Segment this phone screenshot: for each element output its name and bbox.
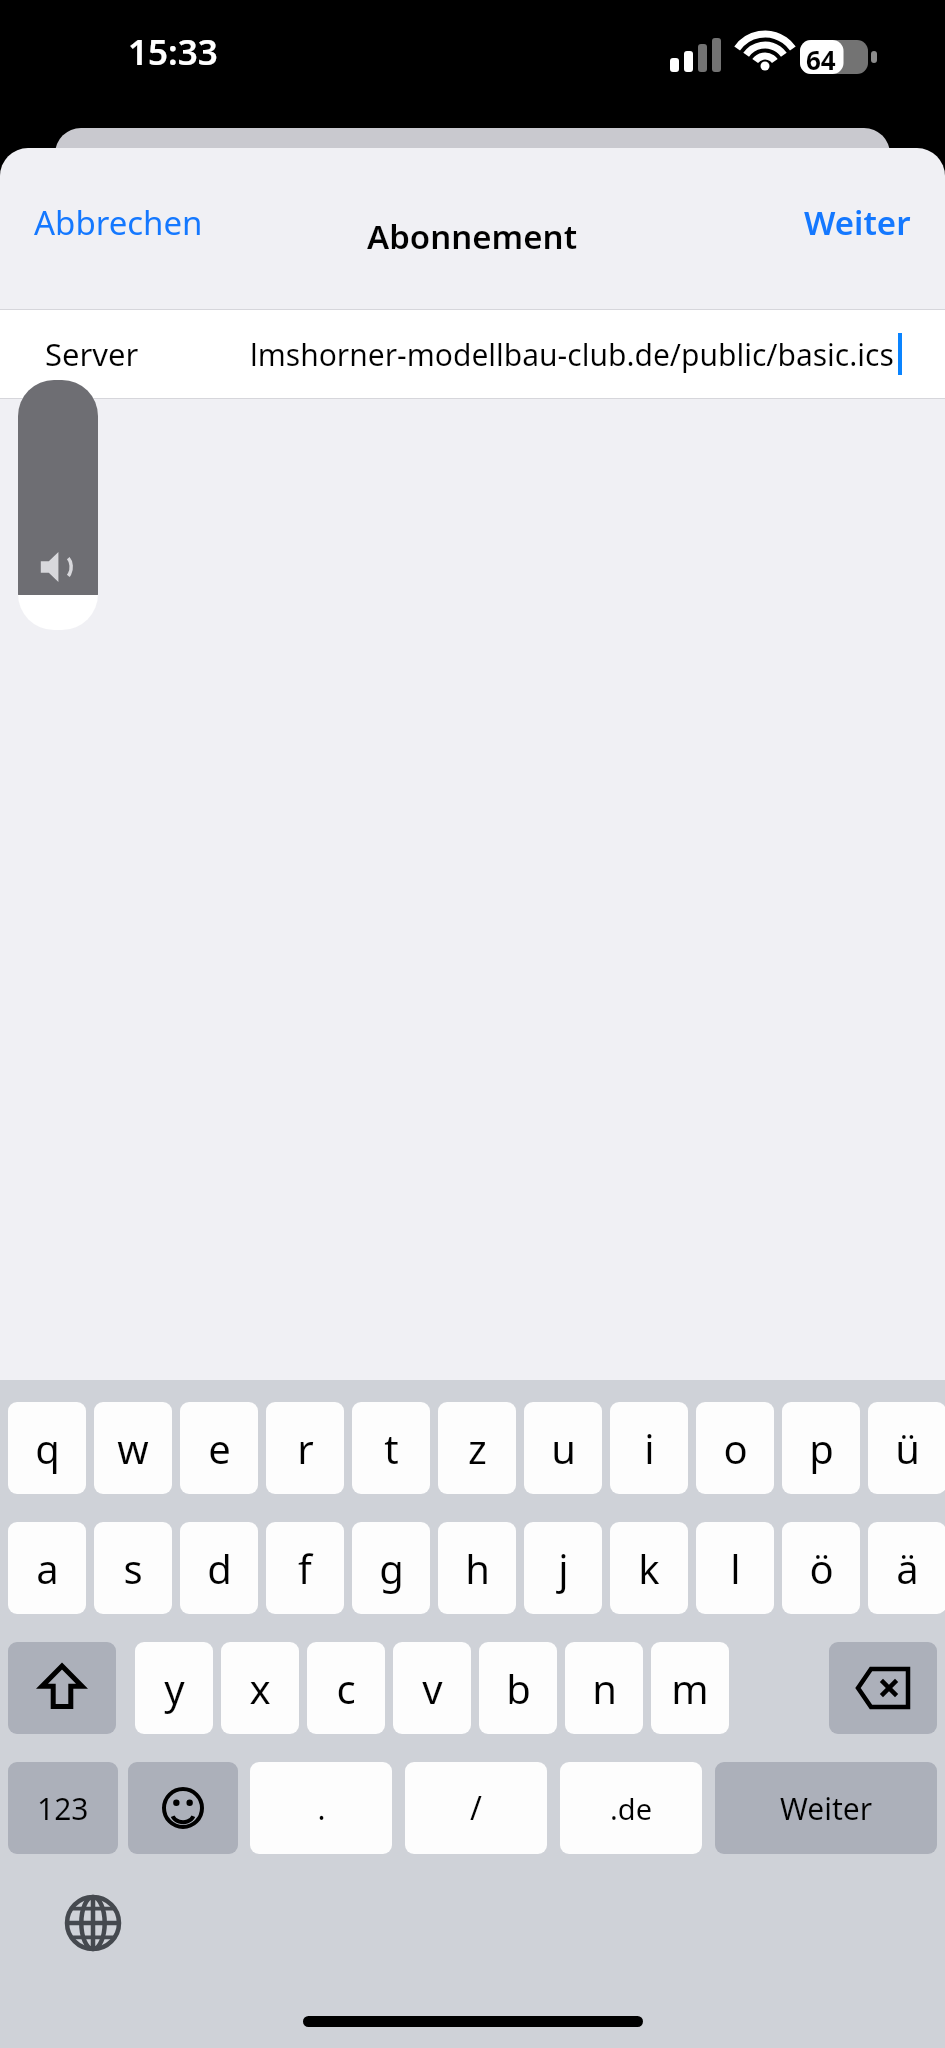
button[interactable]: Server	[0, 310, 945, 398]
staticText: lmshorner-modellbau-club.de/public/basic…	[250, 334, 894, 375]
button[interactable]: .de	[560, 1762, 702, 1854]
button[interactable]: k	[610, 1522, 688, 1614]
button[interactable]: Numbers	[8, 1762, 118, 1854]
staticText: c	[336, 1661, 356, 1715]
button[interactable]: y	[135, 1642, 213, 1734]
staticText: n	[592, 1661, 617, 1715]
staticText: .de	[610, 1789, 652, 1828]
button[interactable]: s	[94, 1522, 172, 1614]
button[interactable]: a	[8, 1522, 86, 1614]
staticText: d	[207, 1541, 232, 1595]
staticText: Weiter	[804, 200, 911, 245]
staticText: 123	[37, 1788, 89, 1829]
button[interactable]: r	[266, 1402, 344, 1494]
button[interactable]: Shift	[8, 1642, 116, 1734]
staticText: w	[117, 1421, 149, 1475]
button[interactable]: x	[221, 1642, 299, 1734]
staticText: t	[384, 1421, 399, 1475]
button[interactable]: z	[438, 1402, 516, 1494]
staticText: ü	[895, 1421, 920, 1475]
button[interactable]: f	[266, 1522, 344, 1614]
button[interactable]: ü	[868, 1402, 945, 1494]
staticText: l	[730, 1541, 741, 1595]
button[interactable]: u	[524, 1402, 602, 1494]
staticText: m	[671, 1661, 709, 1715]
staticText: y	[164, 1661, 185, 1715]
staticText: j	[558, 1541, 569, 1595]
button[interactable]: Backspace	[829, 1642, 937, 1734]
staticText: ä	[896, 1541, 919, 1595]
staticText: q	[35, 1421, 60, 1475]
button[interactable]: p	[782, 1402, 860, 1494]
staticText: Weiter	[780, 1788, 873, 1829]
button[interactable]: w	[94, 1402, 172, 1494]
button[interactable]: ä	[868, 1522, 945, 1614]
staticText: o	[723, 1421, 748, 1475]
button[interactable]: b	[479, 1642, 557, 1734]
button[interactable]: v	[393, 1642, 471, 1734]
staticText: p	[809, 1421, 834, 1475]
staticText: Abonnement	[367, 214, 578, 259]
button[interactable]: i	[610, 1402, 688, 1494]
staticText: i	[644, 1421, 655, 1475]
staticText: h	[465, 1541, 490, 1595]
staticText: ö	[809, 1541, 834, 1595]
button[interactable]: c	[307, 1642, 385, 1734]
button[interactable]: Abbrechen	[34, 200, 203, 245]
staticText: .	[317, 1788, 326, 1829]
button[interactable]: m	[651, 1642, 729, 1734]
button[interactable]: d	[180, 1522, 258, 1614]
button[interactable]: o	[696, 1402, 774, 1494]
button[interactable]: g	[352, 1522, 430, 1614]
button[interactable]: Weiter	[715, 1762, 937, 1854]
staticText: x	[249, 1661, 271, 1715]
button[interactable]: .	[250, 1762, 392, 1854]
button[interactable]: Emoji	[128, 1762, 238, 1854]
button[interactable]: /	[405, 1762, 547, 1854]
button[interactable]: n	[565, 1642, 643, 1734]
button[interactable]: Change keyboard language	[50, 1880, 136, 1966]
staticText: r	[297, 1421, 314, 1475]
other: Volume	[18, 380, 98, 630]
staticText: /	[470, 1786, 482, 1830]
button[interactable]: Weiter	[804, 200, 911, 245]
staticText: z	[468, 1421, 487, 1475]
staticText: Server	[45, 333, 139, 375]
button[interactable]: j	[524, 1522, 602, 1614]
staticText: b	[506, 1661, 531, 1715]
button[interactable]: t	[352, 1402, 430, 1494]
staticText: 15:33	[128, 28, 218, 76]
button[interactable]: l	[696, 1522, 774, 1614]
staticText: Abbrechen	[34, 200, 203, 245]
button[interactable]: h	[438, 1522, 516, 1614]
staticText: s	[123, 1541, 143, 1595]
staticText: u	[551, 1421, 576, 1475]
button[interactable]: e	[180, 1402, 258, 1494]
button[interactable]: q	[8, 1402, 86, 1494]
button[interactable]: ö	[782, 1522, 860, 1614]
staticText: v	[422, 1661, 443, 1715]
staticText: k	[638, 1541, 660, 1595]
staticText: f	[298, 1541, 312, 1595]
staticText: a	[36, 1541, 59, 1595]
staticText: g	[379, 1541, 404, 1595]
staticText: 64	[806, 42, 836, 77]
staticText: e	[208, 1421, 231, 1475]
